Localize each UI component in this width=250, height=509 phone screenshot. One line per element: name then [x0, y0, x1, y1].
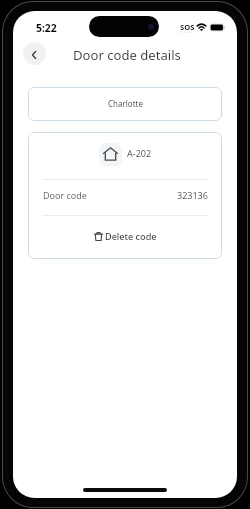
- staticText: 323136: [177, 189, 208, 201]
- button[interactable]: Charlotte: [28, 87, 222, 121]
- staticText: Door code details: [73, 46, 181, 64]
- staticText: Delete code: [105, 230, 157, 242]
- button[interactable]: Back: [23, 42, 46, 65]
- staticText: Charlotte: [108, 98, 143, 109]
- staticText: A-202: [127, 147, 152, 159]
- staticText: Door code: [43, 189, 87, 201]
- button[interactable]: Delete code: [28, 216, 222, 259]
- staticText: SOS: [180, 22, 195, 32]
- staticText: 5:22: [36, 21, 57, 35]
